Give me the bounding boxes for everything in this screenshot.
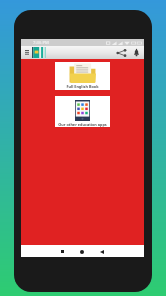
button[interactable]: Share [115,46,128,59]
button[interactable]: Home [76,246,88,257]
button[interactable]: Our other education apps [55,96,110,127]
button[interactable]: Menu [22,46,31,59]
button[interactable]: Notifications [131,46,142,59]
staticText: Our other education apps [58,122,107,127]
button[interactable]: Recents [56,246,68,257]
staticText: 7:36 PM [33,40,49,46]
staticText: Full English Book [66,84,99,89]
button[interactable]: Back [96,246,108,257]
button[interactable]: Full English Book [55,62,110,90]
button[interactable]: English Book app [31,46,46,59]
